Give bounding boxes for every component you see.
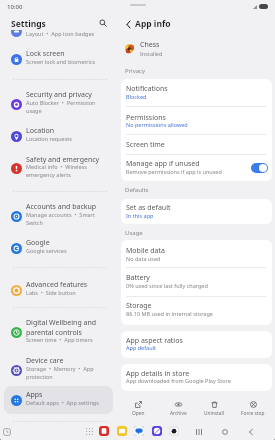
button[interactable]: Camera bbox=[168, 425, 180, 437]
staticText: Advanced features bbox=[26, 280, 88, 290]
button[interactable] bbox=[4, 18, 113, 46]
button[interactable]: Back bbox=[120, 16, 136, 32]
staticText: Storage bbox=[126, 301, 152, 311]
staticText: emergency alerts bbox=[26, 171, 71, 178]
staticText: App downloaded from Google Play Store bbox=[126, 377, 231, 384]
button[interactable] bbox=[4, 386, 113, 414]
staticText: Switch bbox=[26, 219, 43, 226]
button[interactable] bbox=[4, 87, 113, 122]
staticText: Settings bbox=[11, 18, 46, 30]
staticText: Lock screen bbox=[26, 49, 65, 59]
staticText: Remove permissions if app is unused bbox=[126, 168, 222, 175]
staticText: Location bbox=[26, 126, 55, 136]
staticText: Layout • App icon badges bbox=[26, 30, 95, 37]
button[interactable]: Messages bbox=[133, 425, 145, 437]
button[interactable]: Archive bbox=[160, 401, 196, 421]
staticText: Privacy bbox=[125, 67, 146, 75]
staticText: In this app bbox=[126, 212, 154, 219]
staticText: Labs • Side button bbox=[26, 289, 76, 296]
button[interactable] bbox=[4, 199, 113, 234]
staticText: Battery bbox=[126, 273, 150, 283]
button[interactable]: Internet bbox=[151, 425, 163, 437]
button[interactable] bbox=[121, 331, 272, 358]
button[interactable] bbox=[121, 240, 272, 325]
staticText: 86.10 MB used in internal storage bbox=[126, 310, 213, 317]
staticText: Accounts and backup bbox=[26, 202, 97, 212]
staticText: parental controls bbox=[26, 328, 82, 338]
staticText: Auto Blocker • Permission bbox=[26, 99, 96, 106]
staticText: Google services bbox=[26, 247, 67, 254]
button[interactable]: Back bbox=[244, 425, 258, 439]
staticText: Uninstall bbox=[204, 410, 224, 417]
staticText: Usage bbox=[125, 229, 143, 237]
staticText: No data used bbox=[126, 255, 161, 262]
button[interactable]: Search bbox=[96, 16, 110, 30]
button[interactable] bbox=[4, 151, 113, 186]
staticText: Manage app if unused bbox=[126, 159, 200, 169]
staticText: Device care bbox=[26, 356, 64, 366]
staticText: Manage accounts • Smart bbox=[26, 211, 95, 218]
button[interactable]: My Files bbox=[116, 425, 128, 437]
button[interactable]: Recent apps bbox=[1, 426, 12, 437]
staticText: Layout bbox=[26, 21, 49, 31]
staticText: Archive bbox=[170, 410, 187, 417]
button[interactable] bbox=[4, 353, 113, 388]
staticText: No permissions allowed bbox=[126, 121, 188, 128]
staticText: Location requests bbox=[26, 135, 72, 142]
button[interactable] bbox=[121, 199, 272, 224]
staticText: Chess bbox=[140, 40, 160, 50]
staticText: Google bbox=[26, 238, 50, 248]
staticText: 0% used since last fully charged bbox=[126, 282, 208, 289]
staticText: Security and privacy bbox=[26, 90, 92, 100]
staticText: Force stop bbox=[241, 410, 265, 417]
staticText: protection bbox=[26, 373, 53, 380]
staticText: Screen time bbox=[126, 140, 165, 150]
staticText: Medical info • Wireless bbox=[26, 163, 87, 170]
button[interactable] bbox=[4, 45, 113, 73]
button[interactable]: Open bbox=[120, 401, 156, 421]
button[interactable] bbox=[4, 276, 113, 304]
button[interactable]: Samsung Notes bbox=[98, 425, 110, 437]
staticText: App default bbox=[126, 344, 156, 351]
staticText: Blocked bbox=[126, 93, 147, 100]
staticText: App details in store bbox=[126, 369, 190, 379]
staticText: Set as default bbox=[126, 203, 171, 213]
staticText: App info bbox=[135, 18, 171, 30]
staticText: Apps bbox=[26, 390, 43, 400]
button[interactable] bbox=[4, 234, 113, 262]
button[interactable]: Force stop bbox=[235, 401, 271, 421]
staticText: 10:00 bbox=[7, 3, 23, 11]
staticText: Screen lock and biometrics bbox=[26, 58, 96, 65]
staticText: Default apps • App settings bbox=[26, 399, 99, 406]
button[interactable] bbox=[4, 123, 113, 151]
staticText: App aspect ratios bbox=[126, 336, 183, 346]
button[interactable]: Recents bbox=[192, 425, 206, 439]
staticText: Defaults bbox=[125, 186, 149, 194]
button[interactable]: Manage app if unused toggle bbox=[251, 163, 268, 173]
button[interactable]: Home bbox=[218, 425, 232, 439]
staticText: Screen time • App timers bbox=[26, 336, 93, 343]
button[interactable] bbox=[121, 79, 272, 181]
staticText: Safety and emergency bbox=[26, 155, 100, 165]
button[interactable] bbox=[4, 314, 113, 351]
button[interactable]: Uninstall bbox=[196, 401, 232, 421]
staticText: Installed bbox=[140, 50, 163, 57]
staticText: Open bbox=[132, 410, 145, 417]
staticText: Permissions bbox=[126, 113, 166, 123]
staticText: Storage • Memory • App bbox=[26, 365, 94, 372]
staticText: Notifications bbox=[126, 84, 168, 94]
staticText: usage bbox=[26, 107, 42, 114]
staticText: Digital Wellbeing and bbox=[26, 318, 97, 328]
staticText: Mobile data bbox=[126, 246, 165, 256]
button[interactable] bbox=[121, 364, 272, 391]
